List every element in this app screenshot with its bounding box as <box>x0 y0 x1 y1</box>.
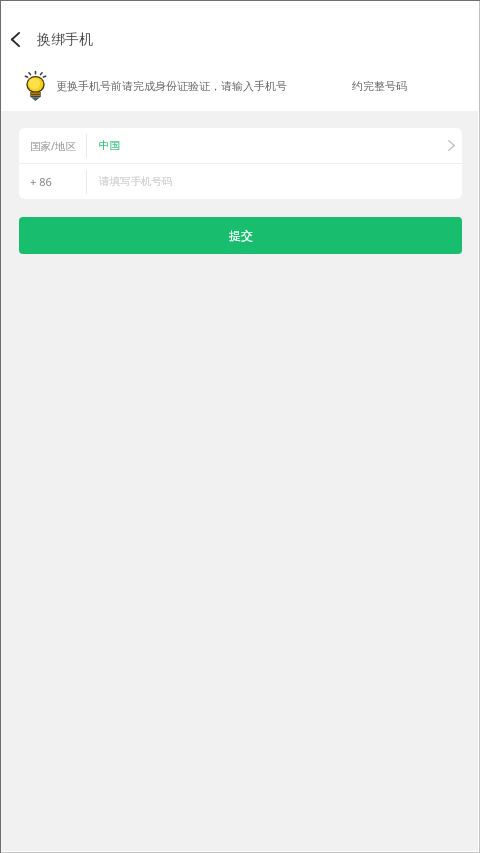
staticText: 约完整号码 <box>352 79 407 93</box>
button[interactable]: 国家/地区 <box>19 128 462 163</box>
button[interactable]: + 86 <box>19 164 462 199</box>
staticText: + 86 <box>30 174 52 189</box>
button[interactable]: 提交 <box>19 217 462 254</box>
staticText: 更换手机号前请完成身份证验证，请输入手机号 <box>56 79 287 93</box>
staticText: 请填写手机号码 <box>99 175 173 188</box>
staticText: 提交 <box>229 228 253 243</box>
staticText: 中国 <box>99 139 120 152</box>
staticText: 换绑手机 <box>37 31 93 49</box>
staticText: 国家/地区 <box>30 139 76 153</box>
button[interactable]: Back <box>1 18 31 62</box>
